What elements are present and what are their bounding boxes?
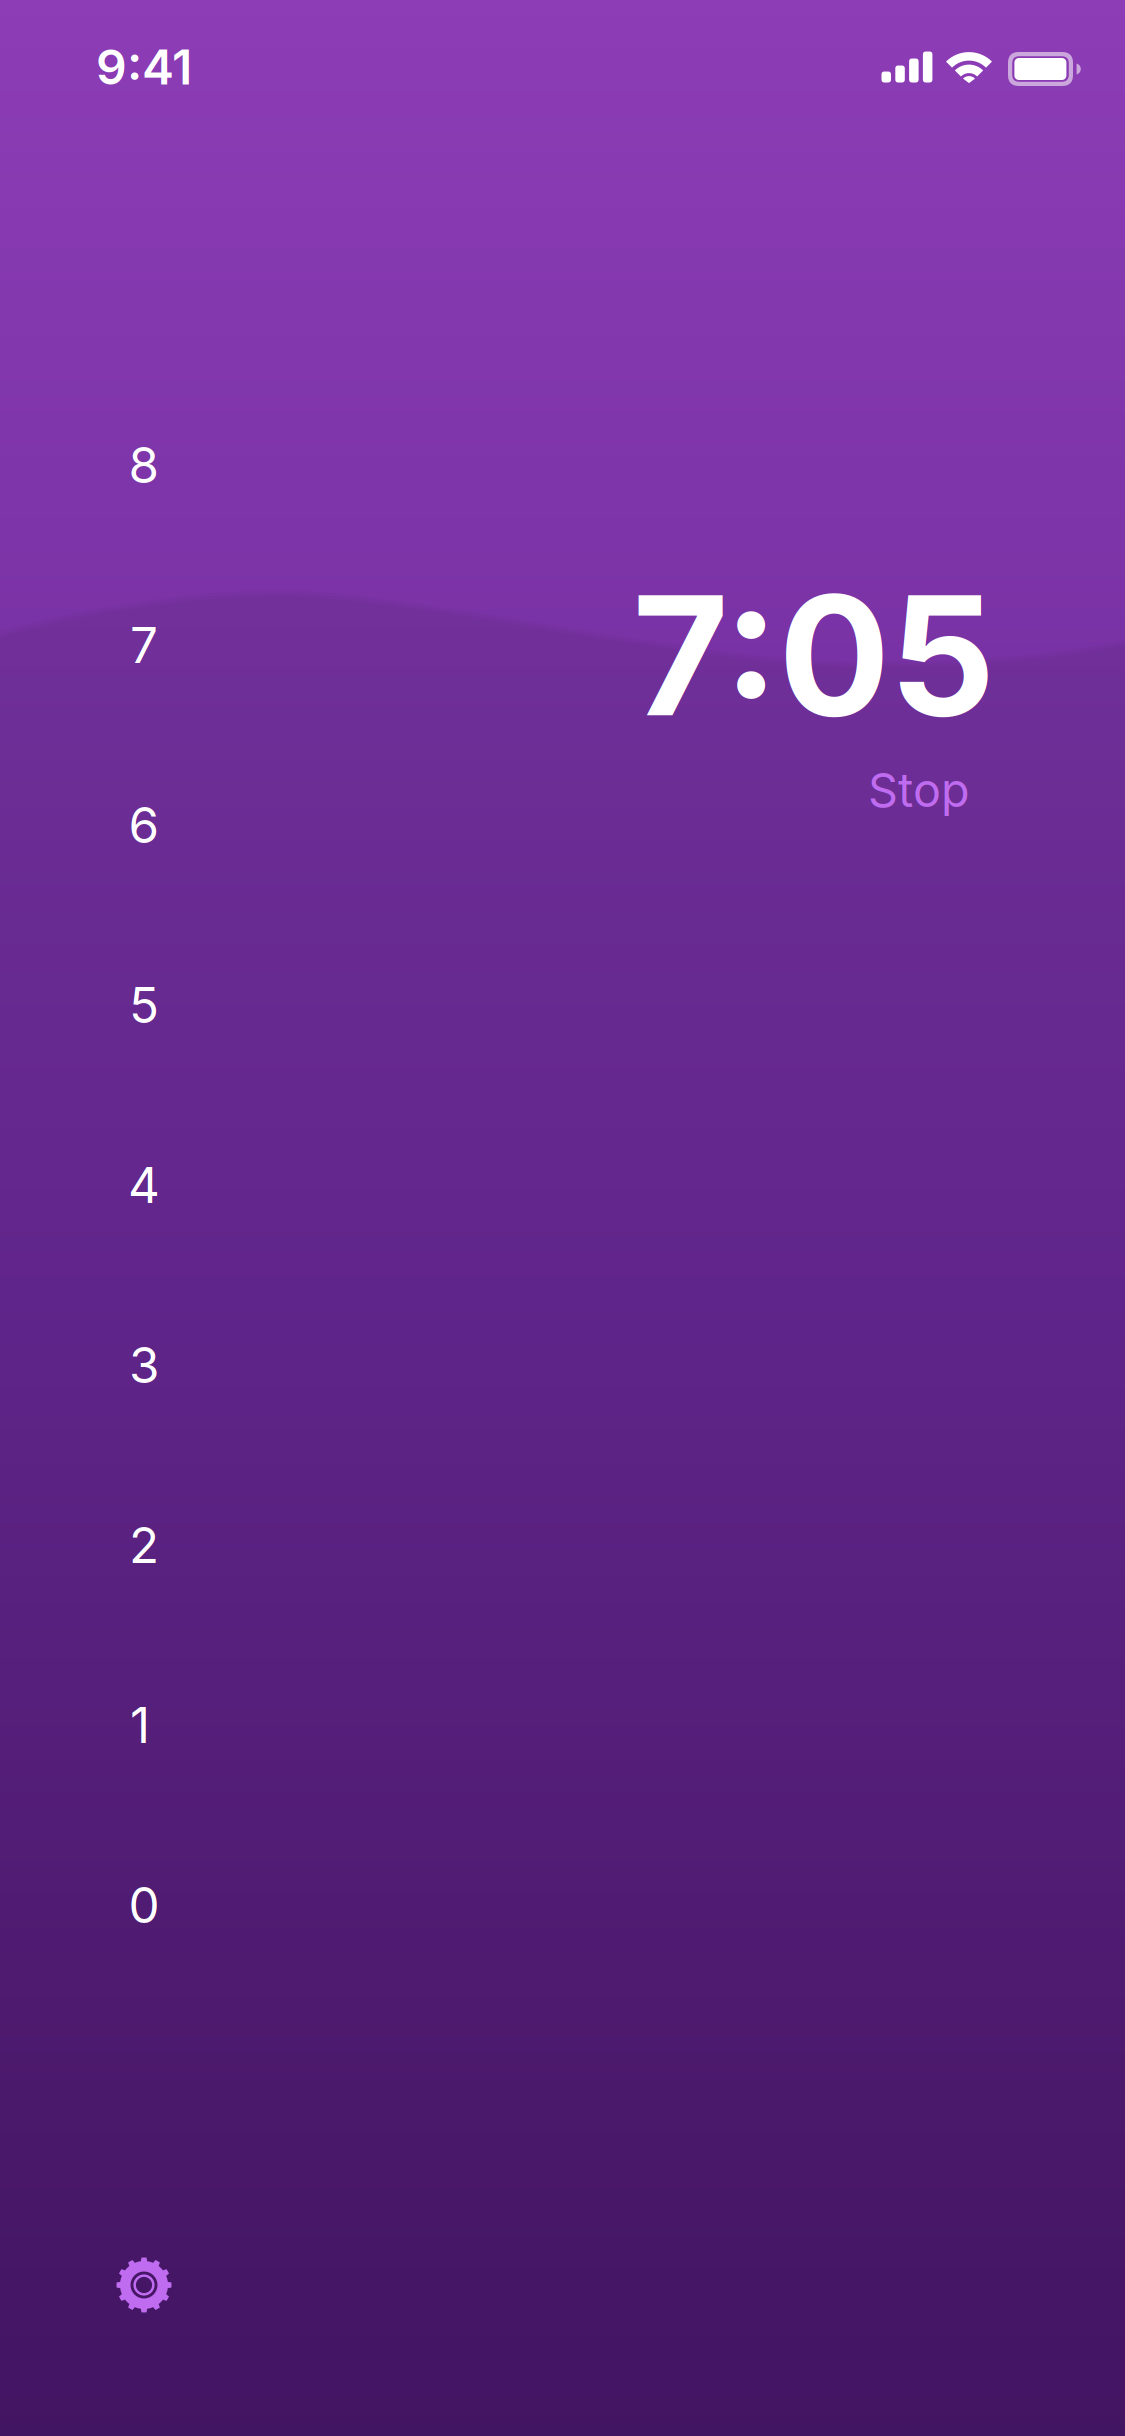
staticText: 9:41 (96, 38, 192, 96)
staticText: 0 (128, 1875, 159, 1935)
button[interactable]: Settings (114, 2255, 174, 2315)
staticText: 5 (129, 975, 159, 1035)
staticText: 1 (130, 1695, 150, 1755)
staticText: 7:05 (632, 555, 995, 755)
staticText: 4 (128, 1155, 160, 1215)
button[interactable]: Stop (868, 762, 970, 818)
staticText: 8 (128, 435, 159, 495)
staticText: 6 (128, 795, 159, 855)
staticText: 2 (129, 1515, 159, 1575)
staticText: 7 (130, 615, 158, 675)
staticText: 3 (129, 1335, 159, 1395)
staticText: Stop (868, 762, 970, 818)
